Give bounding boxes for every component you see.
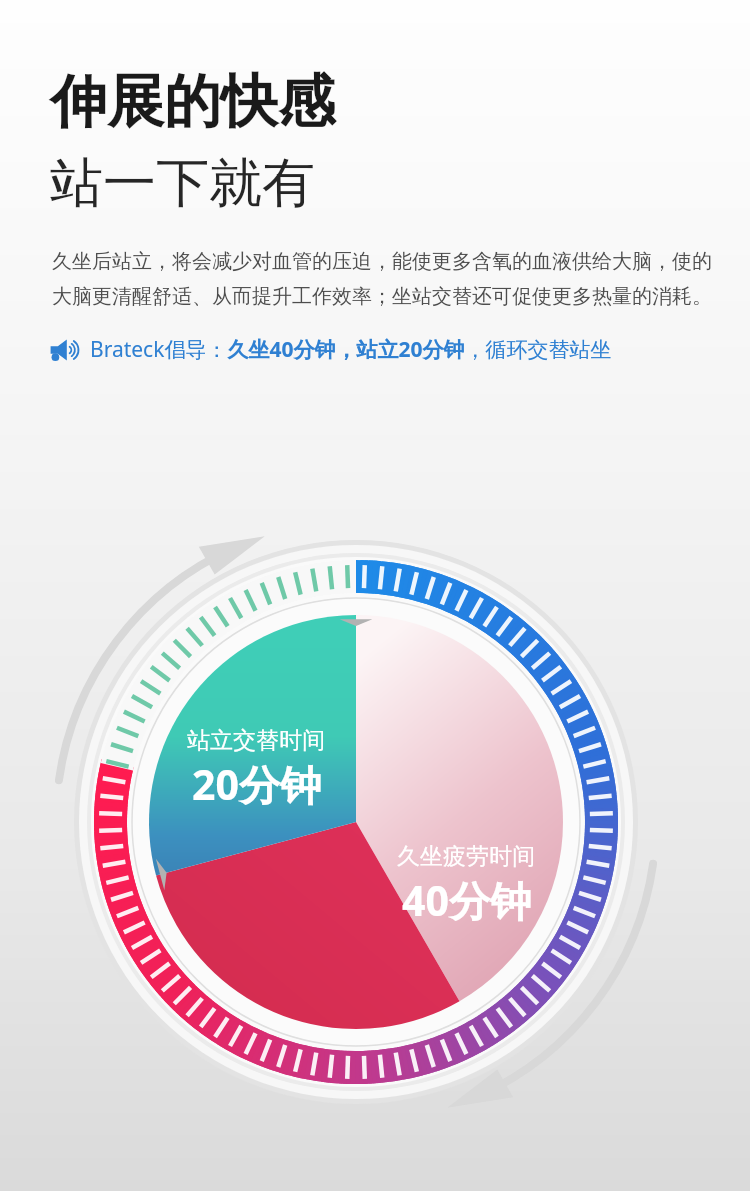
staticText: Brateck倡导：久坐40分钟，站立20分钟，循环交替站坐 (90, 335, 612, 364)
staticText: 40分钟 (402, 872, 531, 928)
other: Brateck announcement (50, 338, 80, 362)
staticText: 站一下就有 (50, 150, 315, 217)
staticText: 站立交替时间 (187, 726, 325, 755)
button[interactable]: Brateck announcement (50, 335, 612, 364)
staticText: 久坐后站立，将会减少对血管的压迫，能使更多含氧的血液供给大脑，使的大脑更清醒舒适… (52, 249, 718, 309)
staticText: 20分钟 (192, 756, 321, 812)
staticText: 伸展的快感 (50, 66, 335, 138)
staticText: 久坐疲劳时间 (397, 842, 535, 871)
